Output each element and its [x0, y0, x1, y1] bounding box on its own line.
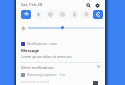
staticText: Sat, Feb 28: [21, 2, 43, 8]
button[interactable]: Notifications · now: [16, 38, 105, 60]
button[interactable]: Silent notifications: [16, 63, 105, 70]
button[interactable]: Quick setting: [81, 10, 91, 19]
button[interactable]: Quick setting: [69, 10, 79, 19]
button[interactable]: Brightness: [28, 27, 104, 29]
button[interactable]: Samsung capture · 1m: [16, 70, 105, 85]
staticText: Samsung capture · 1m: [27, 72, 65, 77]
button[interactable]: Settings: [93, 1, 101, 9]
button[interactable]: Quick setting: [93, 10, 103, 19]
button[interactable]: Quick setting: [57, 10, 67, 19]
button[interactable]: Quick setting: [33, 10, 43, 19]
staticText: Message: [21, 48, 40, 54]
button[interactable]: Search: [84, 1, 92, 9]
button[interactable]: Quick setting: [45, 10, 55, 19]
staticText: Lorem ipsum dolor sit amet con: [21, 54, 72, 59]
staticText: Silent notifications: [21, 65, 54, 70]
button[interactable]: Quick setting: [21, 10, 31, 19]
staticText: Screenshot saved: [21, 79, 49, 84]
staticText: Notifications · now: [27, 41, 57, 46]
